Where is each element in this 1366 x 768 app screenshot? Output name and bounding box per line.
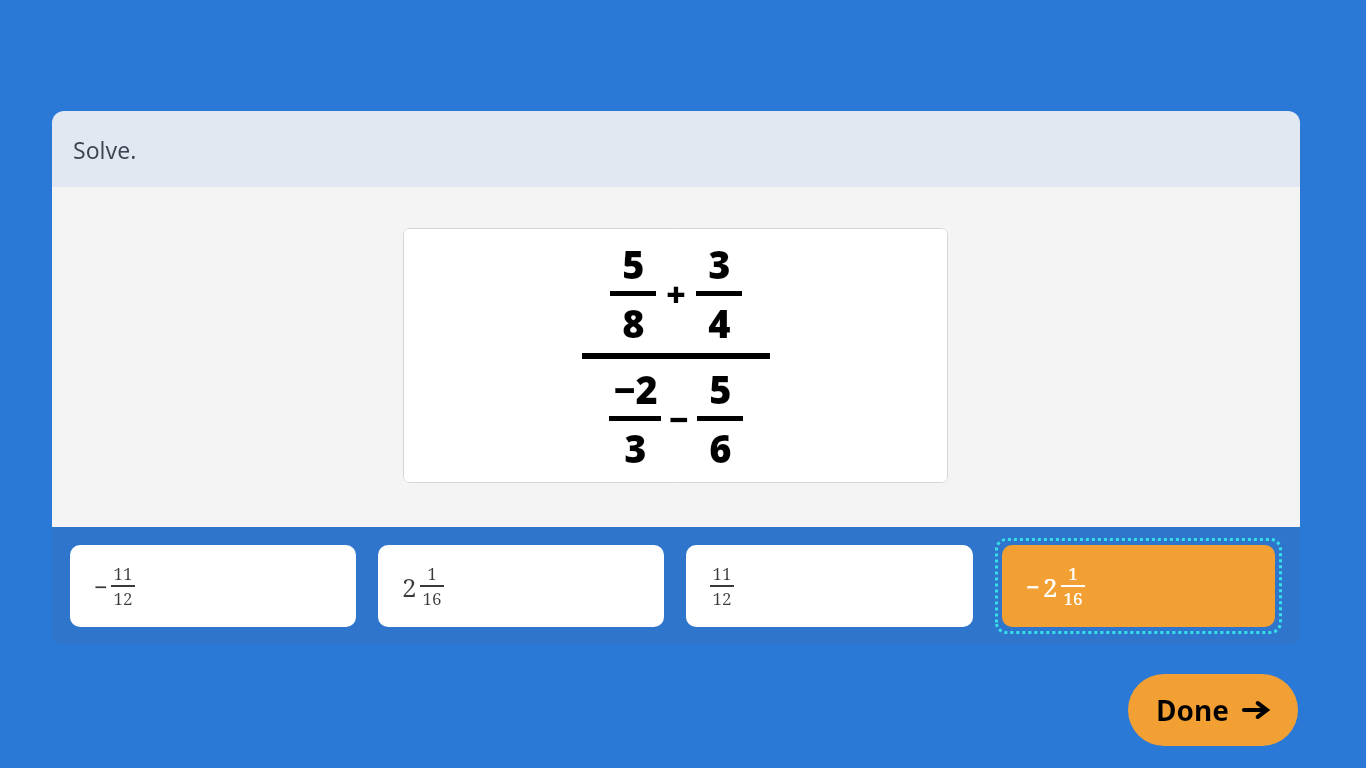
- button[interactable]: −: [1002, 545, 1275, 627]
- button[interactable]: 2: [378, 545, 664, 627]
- staticText: 1: [427, 562, 437, 585]
- staticText: −: [1026, 570, 1040, 603]
- staticText: 16: [1063, 587, 1083, 610]
- button[interactable]: Done: [1128, 674, 1298, 746]
- staticText: 16: [422, 587, 442, 610]
- staticText: 12: [113, 587, 133, 610]
- staticText: 5: [709, 363, 732, 415]
- staticText: −: [669, 396, 689, 442]
- button[interactable]: −: [70, 545, 356, 627]
- staticText: +: [666, 271, 686, 317]
- staticText: 11: [712, 562, 732, 585]
- staticText: 1: [1068, 562, 1078, 585]
- staticText: 11: [113, 562, 133, 585]
- staticText: 5: [622, 238, 645, 290]
- staticText: 8: [622, 297, 645, 349]
- staticText: 3: [708, 238, 731, 290]
- staticText: 2: [1043, 569, 1058, 604]
- staticText: Solve.: [73, 134, 137, 165]
- staticText: 4: [708, 297, 731, 349]
- staticText: 6: [709, 422, 732, 474]
- button[interactable]: 11: [686, 545, 973, 627]
- staticText: −2: [613, 363, 658, 415]
- staticText: −: [94, 570, 108, 603]
- staticText: Done: [1156, 691, 1229, 729]
- staticText: 12: [712, 587, 732, 610]
- staticText: 2: [402, 569, 417, 604]
- other: Next: [1241, 695, 1271, 725]
- staticText: 3: [624, 422, 647, 474]
